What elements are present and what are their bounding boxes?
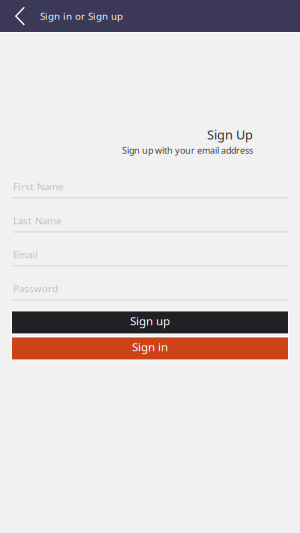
- staticText: Sign Up: [207, 126, 253, 143]
- staticText: Email: [13, 248, 38, 261]
- staticText: First Name: [13, 180, 63, 193]
- staticText: Sign up with your email address: [122, 144, 253, 156]
- button[interactable]: Sign up: [11, 310, 289, 334]
- staticText: Sign in or Sign up: [40, 9, 123, 23]
- staticText: Sign up: [130, 313, 170, 329]
- button[interactable]: Back: [0, 0, 40, 32]
- button[interactable]: Sign in: [11, 336, 289, 360]
- staticText: Sign in: [132, 339, 168, 355]
- staticText: Last Name: [13, 214, 61, 227]
- staticText: Password: [13, 282, 58, 295]
